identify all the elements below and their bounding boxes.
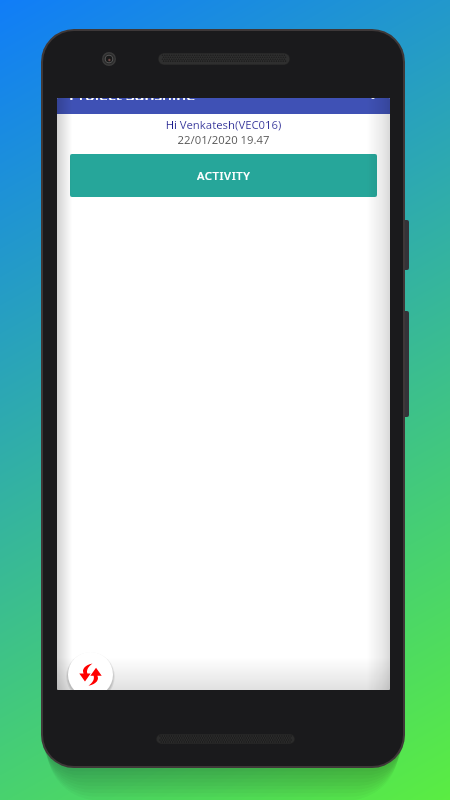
button[interactable]: More options: [362, 98, 384, 100]
staticText: ACTIVITY: [197, 168, 251, 183]
other: Power button: [398, 220, 409, 270]
other: Volume buttons: [398, 311, 409, 417]
staticText: Project Sunshine: [69, 98, 196, 100]
button[interactable]: Sync: [68, 652, 113, 690]
button[interactable]: Project Sunshine: [57, 98, 390, 114]
button[interactable]: ACTIVITY: [70, 154, 377, 197]
staticText: 22/01/2020 19.47: [57, 132, 390, 147]
staticText: Hi Venkatesh(VEC016): [57, 117, 390, 132]
